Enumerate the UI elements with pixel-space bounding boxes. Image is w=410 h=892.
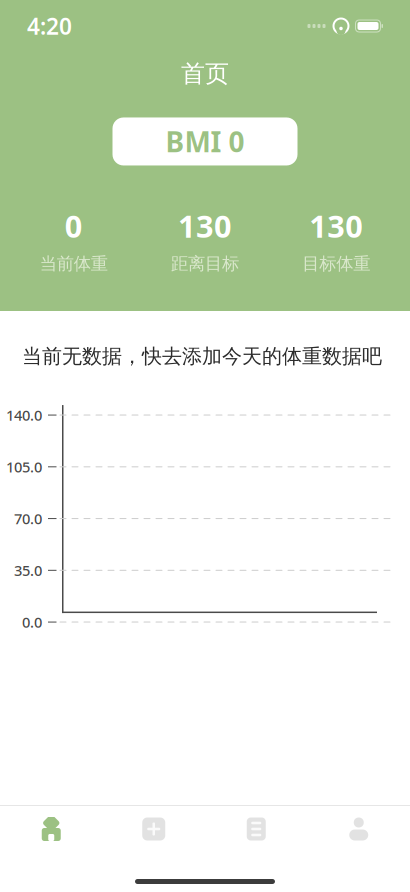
staticText: 距离目标: [171, 253, 239, 274]
staticText: BMI 0: [165, 123, 244, 160]
staticText: 目标体重: [302, 253, 370, 274]
staticText: 4:20: [27, 11, 72, 41]
staticText: 105.0: [6, 457, 42, 477]
staticText: 70.0: [14, 509, 42, 528]
staticText: 140.0: [6, 405, 42, 425]
button[interactable]: 我的: [307, 806, 410, 852]
staticText: 0.0: [22, 612, 42, 632]
button[interactable]: 记录: [205, 806, 307, 852]
staticText: 35.0: [14, 561, 42, 580]
staticText: 首页: [181, 59, 229, 88]
staticText: 当前无数据，快去添加今天的体重数据吧: [22, 344, 382, 369]
staticText: 130: [309, 205, 363, 246]
button[interactable]: BMI 0: [112, 117, 297, 165]
staticText: 130: [178, 205, 232, 246]
button[interactable]: 首页: [0, 806, 102, 852]
staticText: 当前体重: [40, 253, 108, 274]
staticText: 0: [65, 205, 83, 246]
button[interactable]: 添加: [102, 806, 205, 852]
